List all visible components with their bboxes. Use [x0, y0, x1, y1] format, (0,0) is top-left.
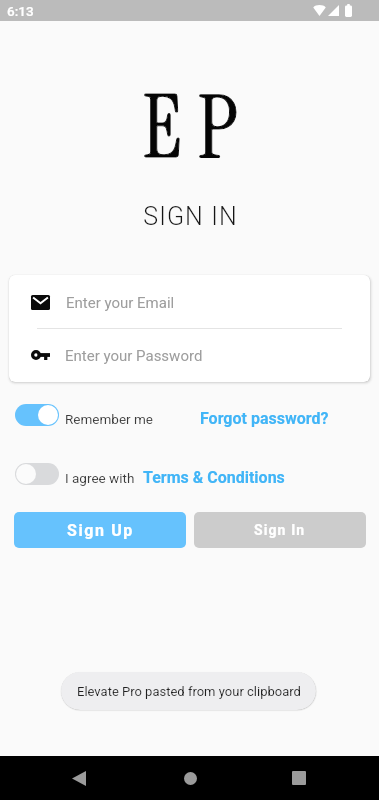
- button[interactable]: Home: [160, 756, 220, 800]
- button[interactable]: Sign In: [194, 512, 366, 548]
- staticText: Enter your Email: [66, 294, 175, 312]
- button[interactable]: Toggle off: [15, 463, 59, 485]
- button[interactable]: Enter your Email: [9, 275, 370, 328]
- staticText: Sign In: [254, 522, 306, 538]
- button[interactable]: Forgot password?: [196, 403, 333, 434]
- button[interactable]: Back: [49, 756, 109, 800]
- staticText: Forgot password?: [200, 409, 329, 428]
- button[interactable]: Enter your Password: [9, 329, 370, 382]
- staticText: Terms & Conditions: [143, 468, 285, 487]
- button[interactable]: Terms & Conditions: [139, 462, 289, 493]
- staticText: 6:13: [7, 3, 34, 19]
- staticText: Elevate Pro pasted from your clipboard: [77, 684, 301, 699]
- staticText: EP: [9, 72, 379, 184]
- staticText: Sign Up: [67, 521, 134, 540]
- staticText: Remember me: [65, 411, 153, 427]
- button[interactable]: Sign Up: [14, 512, 186, 548]
- staticText: I agree with: [65, 470, 135, 486]
- button[interactable]: Toggle on: [15, 404, 59, 426]
- staticText: SIGN IN: [1, 202, 379, 231]
- staticText: EP: [9, 72, 379, 184]
- staticText: Enter your Password: [65, 347, 203, 365]
- button[interactable]: Recent apps: [269, 756, 329, 800]
